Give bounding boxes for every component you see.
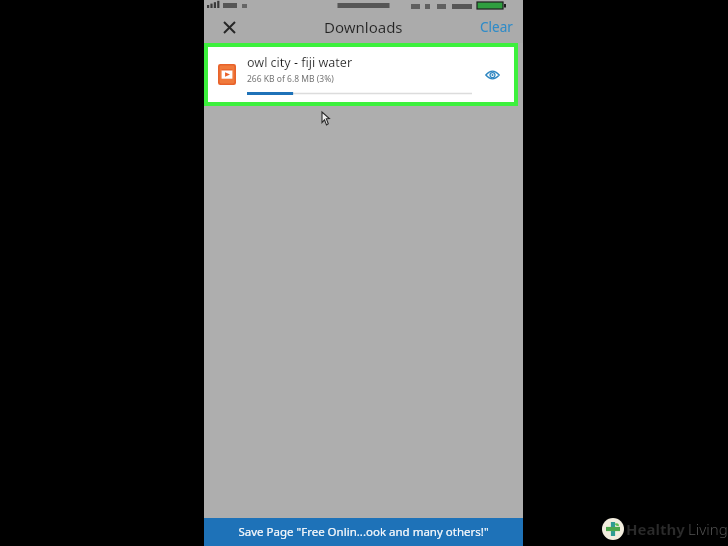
button[interactable]: owl city - fiji water (208, 47, 514, 102)
staticText: 266 KB of 6.8 MB (3%) (247, 73, 334, 85)
staticText: Downloads (324, 17, 403, 37)
button[interactable]: Save Page "Free Onlin...ook and many oth… (204, 518, 523, 546)
button[interactable]: Preview (478, 61, 506, 89)
staticText: Save Page "Free Onlin...ook and many oth… (238, 524, 489, 540)
button[interactable]: Close (213, 11, 245, 43)
staticText: Healthy (626, 519, 685, 539)
staticText: Clear (480, 18, 513, 36)
staticText: Living (688, 519, 728, 539)
staticText: owl city - fiji water (247, 54, 353, 71)
button[interactable]: Clear (470, 12, 523, 42)
